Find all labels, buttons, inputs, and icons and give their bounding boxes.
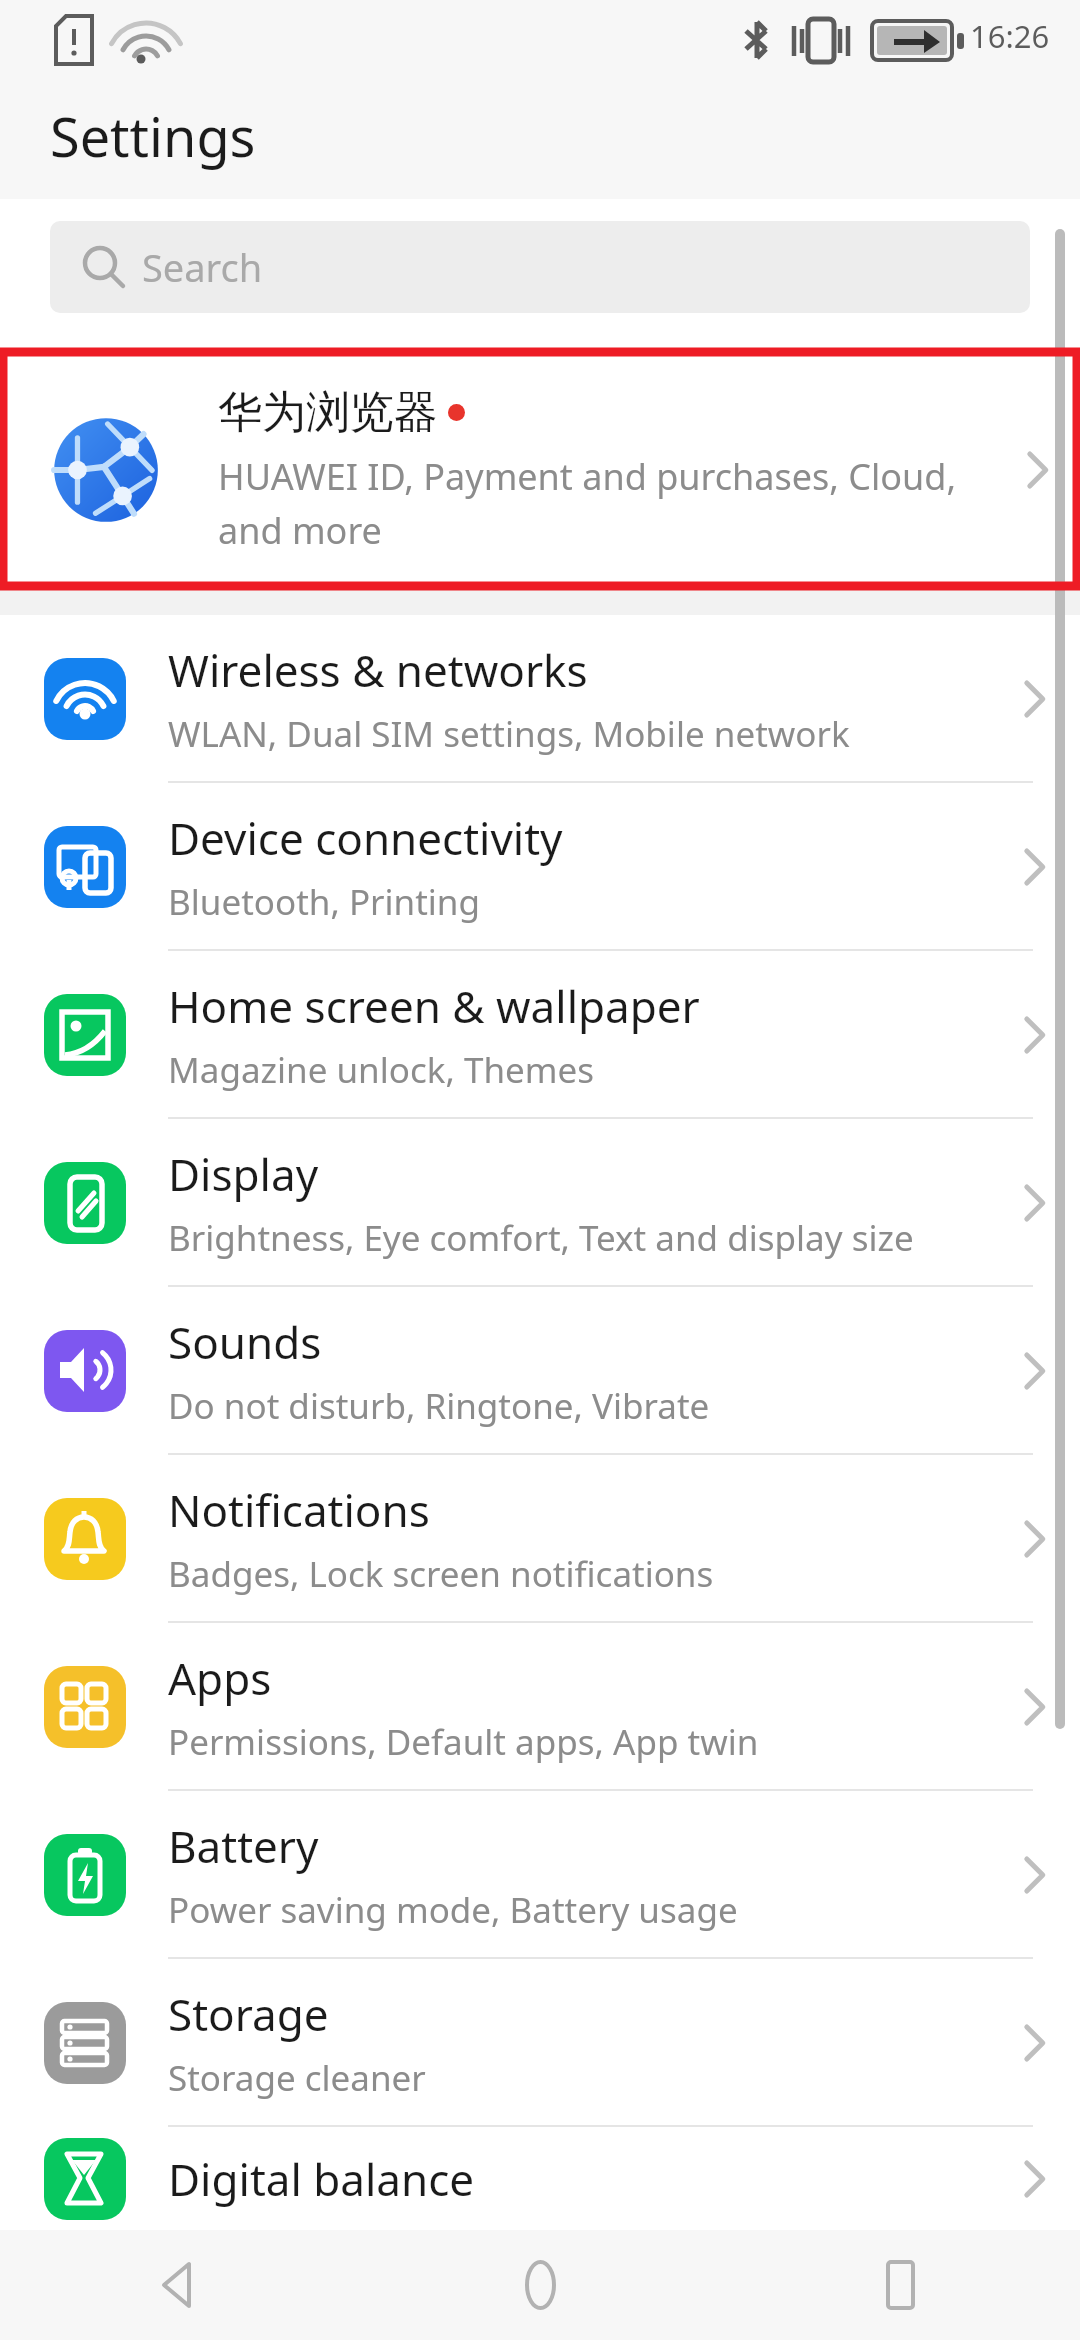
staticText: Magazine unlock, Themes [168,1046,594,1094]
button[interactable]: Sounds [0,1287,1080,1455]
staticText: 华为浏览器 [218,385,438,440]
staticText: Bluetooth, Printing [168,878,480,926]
staticText: Sounds [168,1312,322,1372]
staticText: Badges, Lock screen notifications [168,1550,714,1598]
staticText: Settings [50,99,256,173]
staticText: Power saving mode, Battery usage [168,1886,738,1934]
button[interactable]: Apps [0,1623,1080,1791]
button[interactable]: 华为浏览器 [0,352,1080,587]
button[interactable]: Recent apps [720,2230,1080,2340]
staticText: Apps [168,1648,272,1708]
staticText: Notifications [168,1480,430,1540]
button[interactable]: Notifications [0,1455,1080,1623]
staticText: HUAWEI ID, Payment and purchases, Cloud,… [218,452,957,555]
button[interactable]: Home screen & wallpaper [0,951,1080,1119]
staticText: Permissions, Default apps, App twin [168,1718,759,1766]
button[interactable]: Digital balance [0,2127,1080,2230]
staticText: Digital balance [168,2149,475,2209]
button[interactable]: Display [0,1119,1080,1287]
button[interactable]: Storage [0,1959,1080,2127]
staticText: Do not disturb, Ringtone, Vibrate [168,1382,710,1430]
staticText: Storage cleaner [168,2054,426,2102]
staticText: Device connectivity [168,808,563,868]
staticText: Brightness, Eye comfort, Text and displa… [168,1214,914,1262]
staticText: Search [142,241,263,293]
staticText: Home screen & wallpaper [168,976,700,1036]
staticText: WLAN, Dual SIM settings, Mobile network [168,710,850,758]
button[interactable]: Home [360,2230,720,2340]
button[interactable]: Battery [0,1791,1080,1959]
button[interactable]: Wireless & networks [0,615,1080,783]
staticText: Battery [168,1816,319,1876]
button[interactable]: Back [0,2230,360,2340]
button[interactable]: Search [50,221,1030,313]
staticText: Display [168,1144,319,1204]
button[interactable]: Device connectivity [0,783,1080,951]
staticText: Wireless & networks [168,640,588,700]
staticText: Storage [168,1984,329,2044]
staticText: 16:26 [970,15,1050,57]
